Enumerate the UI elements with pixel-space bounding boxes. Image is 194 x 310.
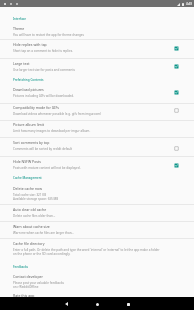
staticText: Comments will be sorted by reddit defaul… <box>13 147 73 151</box>
staticText: Pictures including GIFs will be download… <box>13 94 74 98</box>
staticText: Theme <box>13 26 25 31</box>
staticText: Cache Management <box>13 176 42 180</box>
staticText: Limit how many images to download per im… <box>13 129 91 133</box>
button[interactable]: Sort comments by top <box>0 137 194 156</box>
button[interactable]: Home <box>91 298 103 310</box>
staticText: Short tap on a comment to hide its repli… <box>13 49 73 53</box>
staticText: Compatibility mode for GIFs <box>13 105 60 110</box>
staticText: on r/RedditOffline <box>13 285 39 289</box>
button[interactable]: Download pictures <box>0 85 194 103</box>
button[interactable]: Delete cache now <box>0 183 194 204</box>
staticText: on the phone or the SD card accordingly. <box>13 252 71 256</box>
button[interactable]: Contact developer <box>0 272 194 289</box>
staticText: Available storage space: 635 MB <box>13 197 59 201</box>
staticText: You will have to restart the app for the… <box>13 33 84 37</box>
staticText: Total cache size: 321 KB <box>13 193 47 197</box>
button[interactable]: Warn about cache size <box>0 221 194 238</box>
staticText: Picture album limit <box>13 122 44 127</box>
staticText: Hide NSFW Posts <box>13 159 41 164</box>
staticText: Feedbacks <box>13 265 29 269</box>
button[interactable]: Rate this app <box>0 291 194 308</box>
staticText: Cache file directory <box>13 241 45 246</box>
staticText: Please post your valuable feedbacks <box>13 281 64 285</box>
button[interactable]: Recent apps <box>122 298 134 310</box>
button[interactable]: Cache file directory <box>0 238 194 255</box>
staticText: Warn me when cache files are larger than… <box>13 231 74 235</box>
staticText: Sort comments by top <box>13 140 50 145</box>
staticText: Posts with mature content will not be di… <box>13 166 81 170</box>
button[interactable]: Theme <box>0 23 194 39</box>
staticText: Auto clear old cache <box>13 207 47 212</box>
staticText: Delete cache now <box>13 186 42 191</box>
staticText: Interface <box>13 17 27 21</box>
staticText: Download videos whenever possible (e.g. … <box>13 112 102 116</box>
staticText: Contact developer <box>13 274 43 279</box>
button[interactable]: Hide NSFW Posts <box>0 156 194 174</box>
button[interactable]: Compatibility mode for GIFs <box>0 103 194 120</box>
staticText: Warn about cache size <box>13 224 50 229</box>
staticText: Use larger text size for posts and comme… <box>13 68 75 72</box>
button[interactable]: Auto clear old cache <box>0 204 194 221</box>
button[interactable]: Large text <box>0 59 194 76</box>
staticText: Rate this app <box>13 293 35 298</box>
staticText: Large text <box>13 61 30 66</box>
staticText: 4:49 <box>186 2 192 6</box>
button[interactable]: Back <box>60 298 72 310</box>
staticText: Download pictures <box>13 87 44 92</box>
staticText: Delete cache files older than... <box>13 214 56 218</box>
staticText: Enter a full path. Or delete the path an… <box>13 248 160 252</box>
staticText: Hide replies with tap <box>13 42 47 47</box>
button[interactable]: Picture album limit <box>0 120 194 137</box>
staticText: Prefetching Contents <box>13 78 44 82</box>
button[interactable]: Hide replies with tap <box>0 39 194 58</box>
